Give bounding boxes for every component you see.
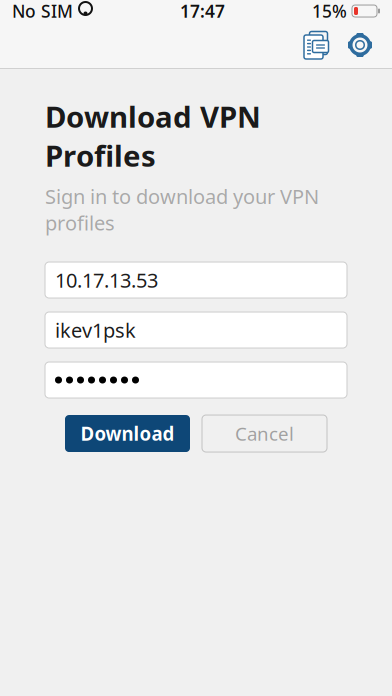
button[interactable]: Settings bbox=[338, 23, 382, 67]
staticText: No SIM bbox=[12, 0, 73, 22]
staticText: 15% bbox=[312, 0, 347, 22]
staticText: 17:47 bbox=[180, 0, 225, 22]
button[interactable]: Download bbox=[65, 415, 190, 452]
button[interactable]: Cancel bbox=[202, 415, 327, 452]
staticText: 10.17.13.53 bbox=[55, 267, 158, 293]
button[interactable]: Email logs bbox=[294, 23, 338, 67]
staticText: Download bbox=[80, 421, 174, 446]
staticText: Cancel bbox=[235, 421, 294, 446]
staticText: Download VPN Profiles bbox=[45, 97, 261, 175]
staticText: Sign in to download your VPN profiles bbox=[45, 183, 319, 236]
staticText: ikev1psk bbox=[55, 317, 136, 343]
